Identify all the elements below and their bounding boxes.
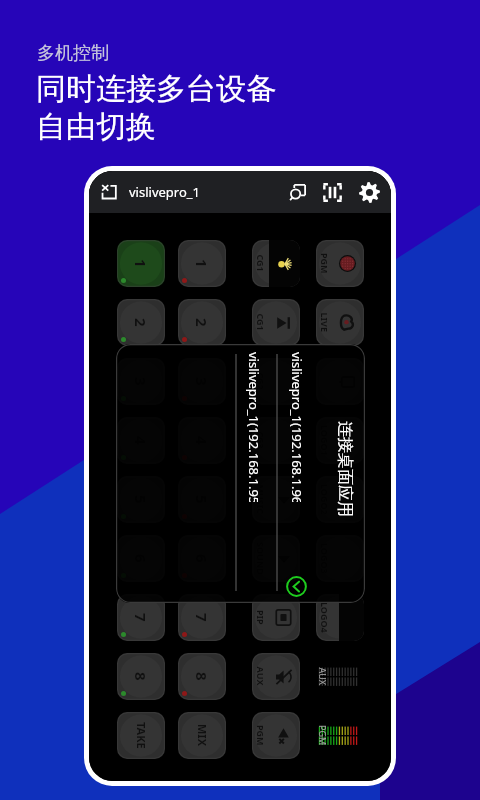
staticText: 同时连接多台设备 — [36, 70, 276, 108]
button[interactable] — [252, 358, 300, 405]
button[interactable] — [117, 299, 165, 346]
button[interactable] — [178, 712, 226, 759]
button[interactable] — [178, 299, 226, 346]
button[interactable]: Scan — [319, 179, 345, 205]
button[interactable] — [316, 299, 364, 346]
button[interactable] — [316, 240, 364, 287]
button[interactable] — [117, 240, 165, 287]
button[interactable] — [178, 653, 226, 700]
button[interactable] — [117, 712, 165, 759]
button[interactable] — [316, 712, 364, 759]
button[interactable] — [252, 476, 300, 523]
button[interactable] — [117, 594, 165, 641]
button[interactable] — [316, 417, 364, 464]
button[interactable] — [252, 712, 300, 759]
button[interactable] — [178, 594, 226, 641]
button[interactable]: Settings — [356, 179, 382, 205]
staticText: vislivepro_1 — [129, 183, 201, 201]
button[interactable] — [316, 594, 364, 641]
button[interactable]: Search — [284, 179, 310, 205]
button[interactable] — [316, 476, 364, 523]
button[interactable] — [117, 653, 165, 700]
button[interactable] — [252, 653, 300, 700]
button[interactable] — [178, 240, 226, 287]
button[interactable] — [252, 417, 300, 464]
button[interactable] — [316, 653, 364, 700]
button[interactable] — [252, 594, 300, 641]
staticText: 多机控制 — [37, 42, 109, 65]
button[interactable] — [252, 240, 300, 287]
button[interactable] — [252, 299, 300, 346]
button[interactable]: Disconnect — [97, 180, 121, 204]
button[interactable] — [252, 535, 300, 582]
staticText: 自由切换 — [36, 108, 156, 146]
button[interactable]: Back — [286, 576, 307, 597]
